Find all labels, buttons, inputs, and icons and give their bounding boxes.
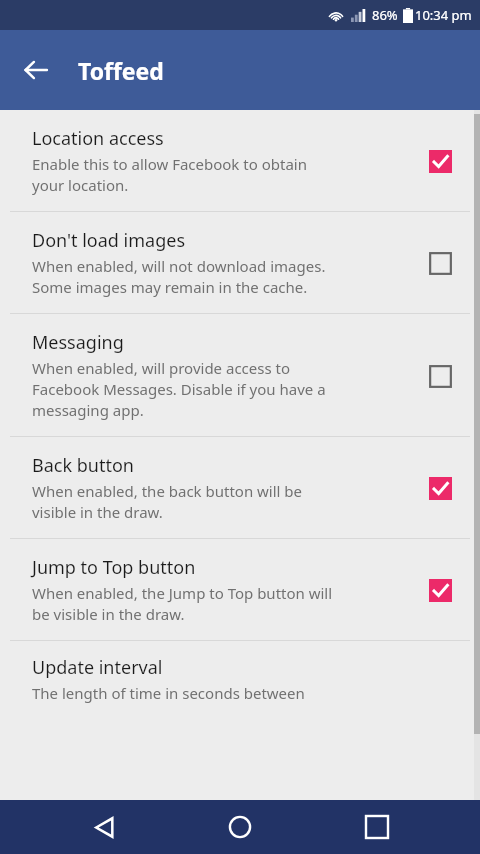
- staticText: be visible in the draw.: [32, 604, 185, 624]
- staticText: Jump to Top button: [32, 555, 196, 580]
- staticText: messaging app.: [32, 400, 144, 420]
- staticText: The length of time in seconds between: [32, 683, 305, 703]
- staticText: When enabled, will not download images.: [32, 256, 326, 276]
- staticText: your location.: [32, 175, 129, 195]
- button[interactable]: Unchecked: [420, 356, 460, 396]
- button[interactable]: Jump to Top button: [0, 539, 480, 640]
- staticText: When enabled, the Jump to Top button wil…: [32, 583, 333, 603]
- button[interactable]: Messaging: [0, 314, 480, 436]
- staticText: Don't load images: [32, 228, 185, 253]
- staticText: 10:34 pm: [415, 6, 472, 24]
- button[interactable]: Location access: [0, 110, 480, 211]
- staticText: Some images may remain in the cache.: [32, 277, 308, 297]
- button[interactable]: Back: [71, 800, 137, 854]
- button[interactable]: Checked: [420, 468, 460, 508]
- button[interactable]: Unchecked: [420, 243, 460, 283]
- button[interactable]: Back: [10, 44, 62, 96]
- button[interactable]: Checked: [420, 141, 460, 181]
- staticText: Update interval: [32, 655, 163, 680]
- staticText: visible in the draw.: [32, 502, 163, 522]
- button[interactable]: Home: [207, 800, 273, 854]
- button[interactable]: Back button: [0, 437, 480, 538]
- staticText: Facebook Messages. Disable if you have a: [32, 379, 326, 399]
- staticText: Back button: [32, 453, 134, 478]
- staticText: Enable this to allow Facebook to obtain: [32, 154, 307, 174]
- button[interactable]: Don't load images: [0, 212, 480, 313]
- staticText: Messaging: [32, 330, 124, 355]
- staticText: Location access: [32, 126, 164, 151]
- staticText: 86%: [372, 6, 398, 24]
- staticText: Toffeed: [78, 55, 164, 86]
- staticText: When enabled, will provide access to: [32, 358, 291, 378]
- staticText: When enabled, the back button will be: [32, 481, 303, 501]
- button[interactable]: Checked: [420, 570, 460, 610]
- button[interactable]: Recent apps: [344, 800, 410, 854]
